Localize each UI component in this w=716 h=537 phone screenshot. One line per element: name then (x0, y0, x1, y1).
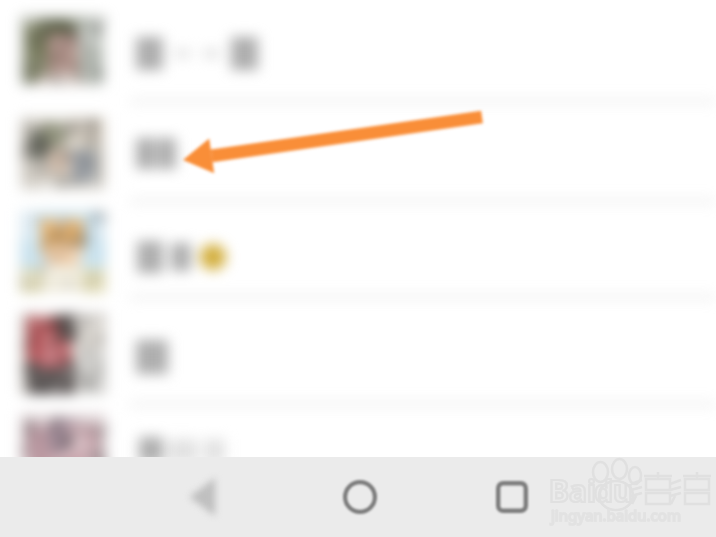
staticText: du (594, 470, 633, 511)
staticText: Bai (549, 470, 596, 511)
button[interactable]: Recent apps (489, 474, 535, 520)
button[interactable]: Home (337, 474, 383, 520)
staticText: jingyan.baidu.com (551, 505, 681, 525)
button[interactable]: Back (178, 471, 228, 523)
